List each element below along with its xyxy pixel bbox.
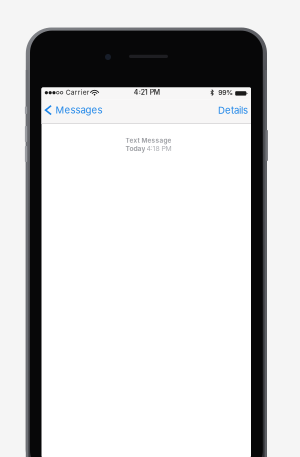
- staticText: Text Message: [125, 136, 171, 144]
- button[interactable]: Messages: [41, 99, 105, 124]
- staticText: 4:21 PM: [134, 88, 160, 96]
- staticText: 99%: [218, 88, 233, 96]
- staticText: 4:18 PM: [146, 144, 171, 152]
- button[interactable]: Details: [210, 99, 251, 124]
- staticText: Details: [218, 104, 248, 116]
- staticText: Carrier: [66, 88, 90, 96]
- staticText: Today: [125, 144, 145, 152]
- staticText: Messages: [55, 104, 102, 116]
